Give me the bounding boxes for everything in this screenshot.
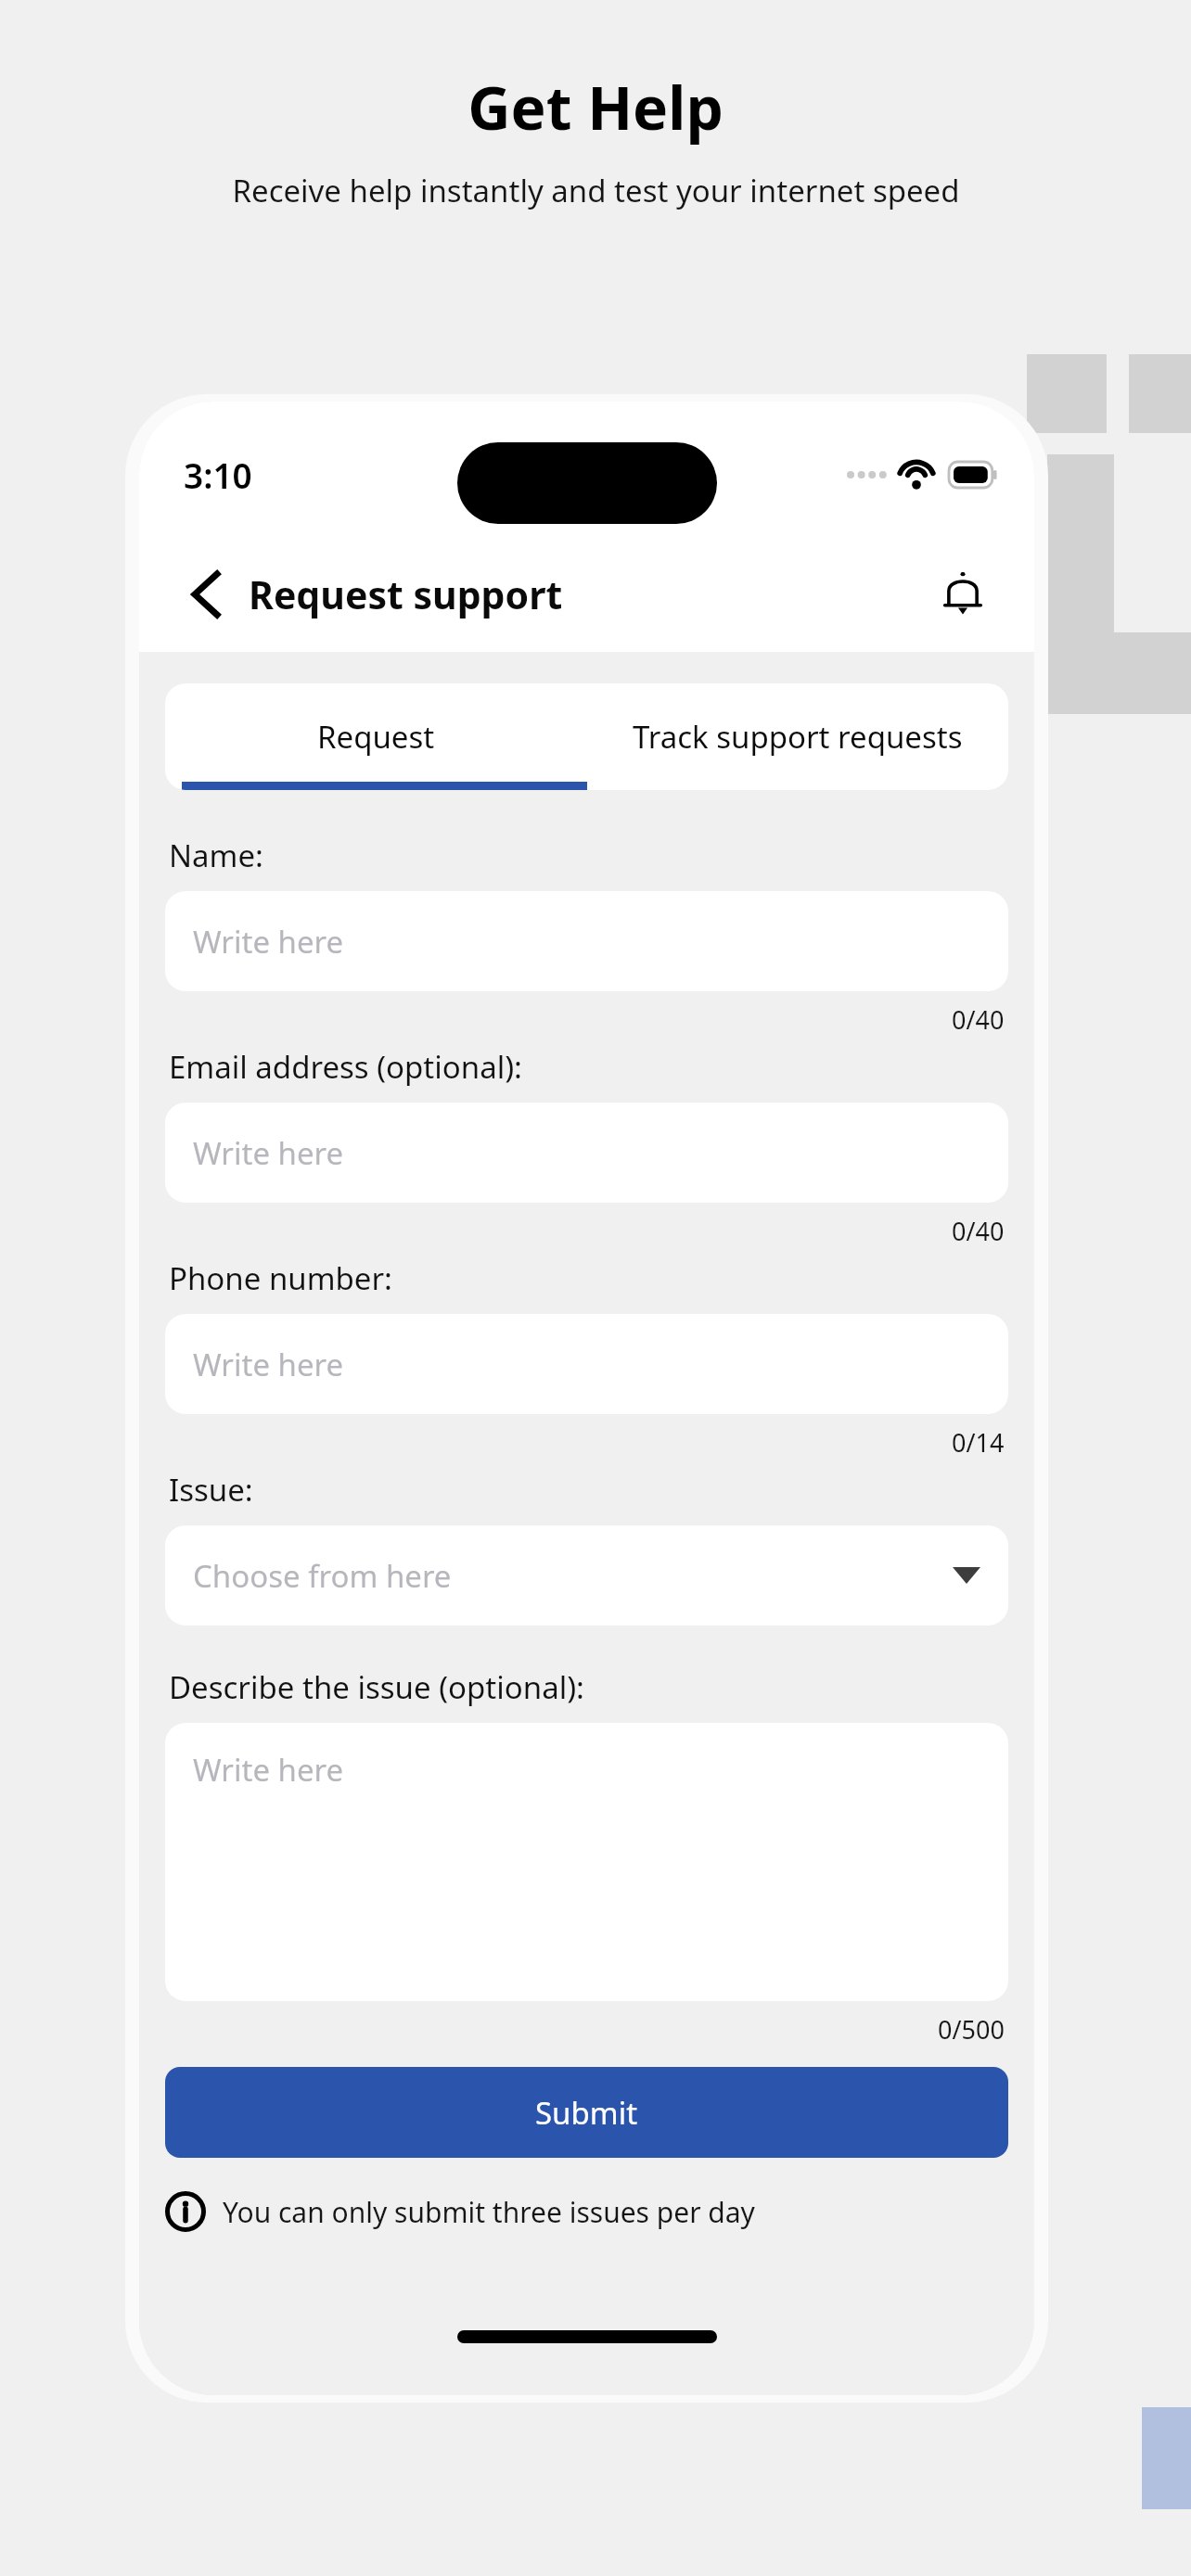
staticText: Name: — [169, 835, 263, 876]
staticText: Request — [317, 716, 435, 758]
staticText: Write here — [193, 921, 344, 963]
staticText: 0/40 — [952, 1002, 1005, 1037]
staticText: Email address (optional): — [169, 1046, 522, 1088]
button[interactable]: Request — [165, 683, 586, 790]
button[interactable]: Write here — [165, 1314, 1008, 1414]
button[interactable]: Track support requests — [586, 683, 1008, 790]
staticText: 0/14 — [952, 1425, 1005, 1460]
staticText: Describe the issue (optional): — [169, 1666, 584, 1708]
staticText: 3:10 — [184, 452, 252, 498]
staticText: Get Help — [467, 67, 724, 147]
button[interactable]: Submit — [165, 2067, 1008, 2158]
staticText: Request support — [249, 568, 563, 620]
button[interactable]: Notifications — [930, 562, 995, 627]
staticText: Issue: — [169, 1469, 253, 1511]
staticText: 0/40 — [952, 1214, 1005, 1248]
staticText: Track support requests — [633, 716, 963, 758]
button[interactable]: Back — [178, 567, 234, 622]
staticText: Write here — [193, 1132, 344, 1174]
staticText: Phone number: — [169, 1257, 392, 1299]
staticText: Write here — [193, 1344, 344, 1385]
staticText: Choose from here — [193, 1555, 452, 1597]
staticText: You can only submit three issues per day — [223, 2193, 755, 2231]
button[interactable]: Write here — [165, 1723, 1008, 2001]
staticText: Receive help instantly and test your int… — [232, 170, 960, 211]
button[interactable]: Write here — [165, 1103, 1008, 1203]
staticText: Submit — [535, 2092, 638, 2134]
staticText: Write here — [193, 1749, 344, 1791]
staticText: 0/500 — [938, 2012, 1005, 2047]
button[interactable]: Choose from here — [165, 1525, 1008, 1626]
button[interactable]: Write here — [165, 891, 1008, 991]
